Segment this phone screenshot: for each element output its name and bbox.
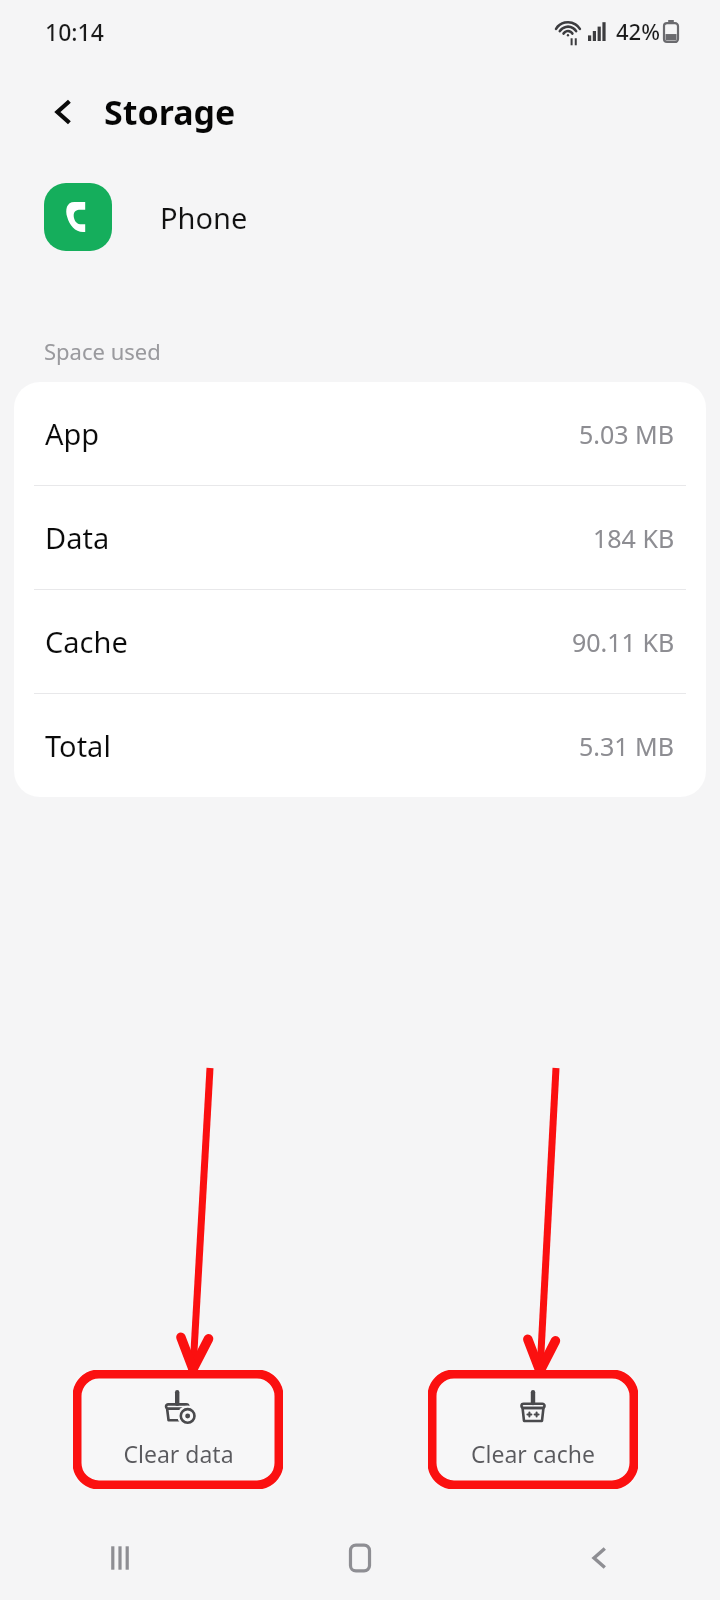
staticText: Total <box>45 726 111 765</box>
button[interactable]: Total <box>14 694 706 797</box>
button[interactable]: Back <box>480 1516 720 1600</box>
staticText: 90.11 KB <box>572 625 675 659</box>
staticText: 5.03 MB <box>579 417 675 451</box>
staticText: Phone <box>160 198 248 237</box>
staticText: Clear data <box>123 1438 234 1469</box>
staticText: Cache <box>45 622 128 661</box>
button[interactable]: Cache <box>14 590 706 694</box>
staticText: App <box>45 414 100 453</box>
button[interactable]: Clear data <box>73 1370 283 1489</box>
staticText: 42% <box>616 16 660 46</box>
button[interactable]: Recents <box>0 1516 240 1600</box>
button[interactable]: Back <box>38 86 90 138</box>
button[interactable]: Home <box>240 1516 480 1600</box>
staticText: Space used <box>44 336 161 366</box>
staticText: Storage <box>104 89 236 135</box>
staticText: Clear cache <box>471 1438 595 1469</box>
staticText: 5.31 MB <box>579 729 675 763</box>
staticText: Data <box>45 518 110 557</box>
staticText: 184 KB <box>593 521 675 555</box>
button[interactable]: Clear cache <box>428 1370 638 1489</box>
button[interactable]: App <box>14 382 706 486</box>
button[interactable]: Data <box>14 486 706 590</box>
staticText: 10:14 <box>45 16 104 47</box>
